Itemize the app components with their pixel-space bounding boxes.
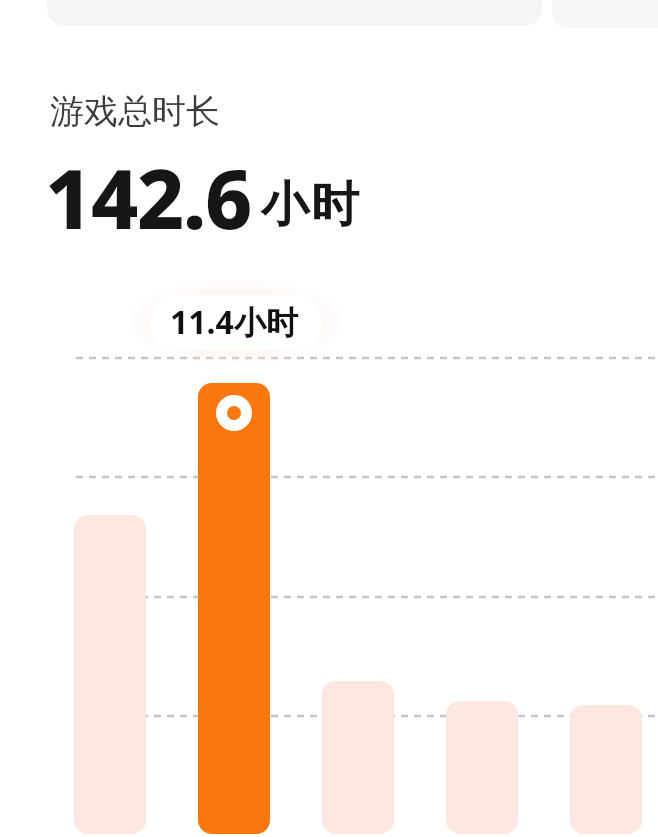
button[interactable] (322, 681, 394, 834)
button[interactable] (198, 383, 270, 834)
button[interactable] (570, 705, 642, 834)
button[interactable] (446, 701, 518, 834)
